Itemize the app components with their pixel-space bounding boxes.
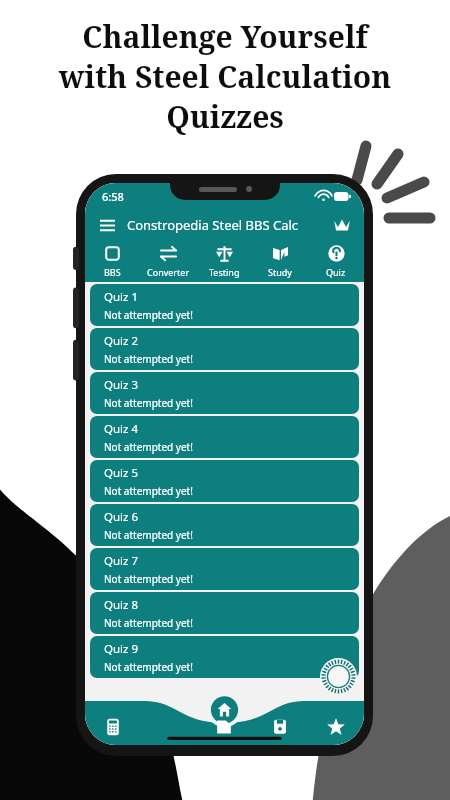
button[interactable]: BBS bbox=[85, 240, 140, 282]
button[interactable]: Calculator bbox=[85, 701, 140, 745]
button[interactable]: Favorites bbox=[308, 701, 364, 745]
staticText: Quiz 5 bbox=[104, 465, 139, 481]
staticText: Study bbox=[268, 266, 292, 278]
button[interactable]: Quiz 8 bbox=[90, 592, 359, 634]
button[interactable]: Premium bbox=[331, 214, 353, 236]
staticText: Converter bbox=[147, 266, 190, 278]
staticText: Quiz 4 bbox=[104, 421, 139, 437]
staticText: Not attempted yet! bbox=[104, 572, 193, 586]
button[interactable]: Quiz 4 bbox=[90, 416, 359, 458]
staticText: Not attempted yet! bbox=[104, 616, 193, 630]
staticText: Not attempted yet! bbox=[104, 440, 193, 454]
staticText: Testing bbox=[209, 266, 240, 278]
staticText: Challenge Yourself with Steel Calculatio… bbox=[10, 16, 440, 137]
button[interactable]: Quiz bbox=[308, 240, 364, 282]
staticText: Not attempted yet! bbox=[104, 484, 193, 498]
button[interactable]: Documents bbox=[196, 701, 252, 745]
staticText: Constropedia Steel BBS Calc bbox=[127, 216, 299, 234]
staticText: Quiz 6 bbox=[104, 509, 139, 525]
staticText: Quiz 2 bbox=[104, 333, 139, 349]
button[interactable]: Quiz 7 bbox=[90, 548, 359, 590]
staticText: Quiz 8 bbox=[104, 597, 139, 613]
button[interactable]: Quiz 6 bbox=[90, 504, 359, 546]
staticText: Quiz 9 bbox=[104, 641, 139, 657]
staticText: Quiz 3 bbox=[104, 377, 139, 393]
button[interactable]: Saved bbox=[252, 701, 308, 745]
staticText: Quiz 1 bbox=[104, 289, 139, 305]
staticText: Not attempted yet! bbox=[104, 660, 193, 674]
staticText: Not attempted yet! bbox=[104, 396, 193, 410]
button[interactable]: Quiz 5 bbox=[90, 460, 359, 502]
button[interactable]: Testing bbox=[196, 240, 252, 282]
button[interactable]: Menu bbox=[96, 214, 118, 236]
button[interactable]: Quiz 2 bbox=[90, 328, 359, 370]
button[interactable]: Quiz 9 bbox=[90, 636, 359, 678]
button[interactable]: Study bbox=[252, 240, 308, 282]
staticText: Not attempted yet! bbox=[104, 308, 193, 322]
button[interactable]: Quiz 3 bbox=[90, 372, 359, 414]
staticText: 6:58 bbox=[102, 189, 124, 204]
staticText: Not attempted yet! bbox=[104, 352, 193, 366]
staticText: Not attempted yet! bbox=[104, 528, 193, 542]
staticText: Quiz 7 bbox=[104, 553, 139, 569]
button[interactable]: Quiz 1 bbox=[90, 284, 359, 326]
staticText: Quiz bbox=[326, 266, 346, 278]
staticText: BBS bbox=[104, 266, 121, 278]
button[interactable]: Converter bbox=[140, 240, 196, 282]
button[interactable]: Question of the day bbox=[320, 658, 357, 695]
button[interactable]: Home bbox=[140, 701, 196, 745]
